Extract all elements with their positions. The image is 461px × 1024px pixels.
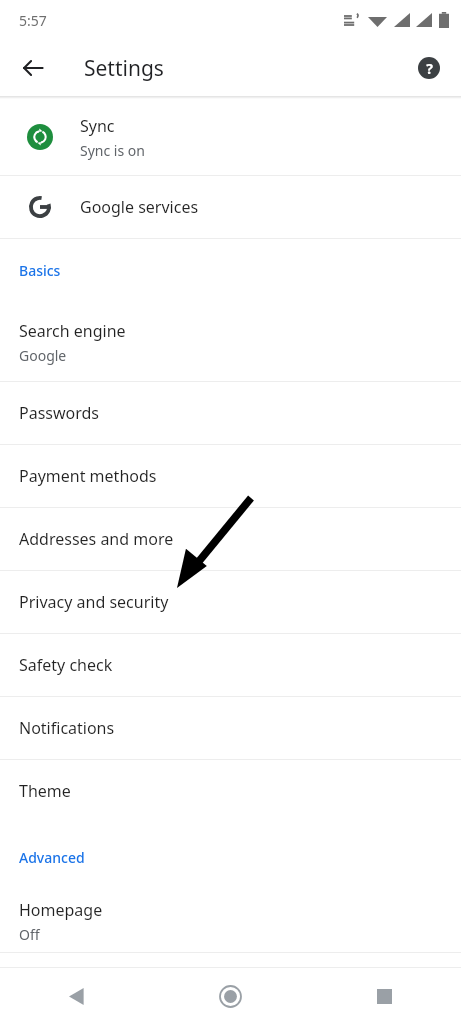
button[interactable]: Google services	[0, 176, 461, 238]
staticText: Advanced	[19, 848, 85, 867]
button[interactable]: Home	[153, 968, 307, 1024]
button[interactable]: Safety check	[0, 634, 461, 696]
button[interactable]: Help and feedback	[409, 48, 449, 88]
staticText: Search engine	[19, 320, 126, 342]
staticText: Off	[19, 925, 40, 944]
staticText: Settings	[84, 54, 164, 83]
staticText: Homepage	[19, 899, 103, 921]
button[interactable]: Addresses and more	[0, 508, 461, 570]
staticText: ?	[426, 59, 433, 78]
button[interactable]: Notifications	[0, 697, 461, 759]
button[interactable]: Homepage	[0, 891, 461, 952]
staticText: Basics	[19, 261, 61, 280]
staticText: Google	[19, 346, 67, 365]
staticText: Google services	[80, 196, 199, 218]
button[interactable]: Search engine	[0, 304, 461, 381]
staticText: Payment methods	[19, 465, 157, 487]
staticText: Safety check	[19, 654, 113, 676]
staticText: Sync	[80, 115, 115, 137]
button[interactable]: Navigate up	[13, 48, 53, 88]
staticText: 5:57	[19, 11, 47, 30]
button[interactable]: Passwords	[0, 382, 461, 444]
button[interactable]: Sync	[0, 99, 461, 175]
staticText: Theme	[19, 780, 71, 802]
button[interactable]: Payment methods	[0, 445, 461, 507]
staticText: Notifications	[19, 717, 115, 739]
staticText: Sync is on	[80, 141, 145, 160]
button[interactable]: Recent apps	[307, 968, 461, 1024]
button[interactable]: Theme	[0, 760, 461, 822]
button[interactable]: Privacy and security	[0, 571, 461, 633]
staticText: Privacy and security	[19, 591, 169, 613]
staticText: Passwords	[19, 402, 100, 424]
staticText: Addresses and more	[19, 528, 174, 550]
button[interactable]: Back	[0, 968, 153, 1024]
